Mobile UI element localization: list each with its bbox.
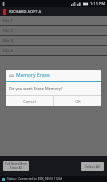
staticText: File 3 bbox=[3, 38, 13, 43]
staticText: OK bbox=[75, 99, 81, 104]
button[interactable]: Cancel bbox=[6, 96, 53, 106]
staticText: 1:11 PM bbox=[90, 1, 106, 6]
staticText: Full Reset Mem bbox=[5, 162, 27, 166]
staticText: Do you want Erase Memory? bbox=[9, 86, 63, 91]
button[interactable]: Select All bbox=[81, 162, 104, 171]
staticText: Cancel bbox=[23, 99, 36, 104]
staticText: File 4 bbox=[3, 48, 13, 53]
button[interactable]: File 3 bbox=[0, 36, 107, 46]
staticText: Memory Erase bbox=[16, 72, 50, 79]
button[interactable]: File 2 bbox=[0, 26, 107, 36]
button[interactable]: RICHARD-SOFT A bbox=[0, 7, 107, 16]
staticText: RICHARD-SOFT A bbox=[9, 9, 42, 14]
button[interactable]: File 4 bbox=[0, 46, 107, 56]
other: Memory bbox=[9, 73, 14, 78]
button[interactable]: File 1 bbox=[0, 16, 107, 26]
staticText: Status : Connected to RDX_DEV.0 11264 bbox=[7, 177, 63, 181]
staticText: Select All bbox=[85, 164, 100, 169]
staticText: File 1 bbox=[3, 18, 13, 23]
staticText: File 2 bbox=[3, 28, 13, 33]
staticText: Erase All bbox=[10, 166, 22, 170]
button[interactable]: Full Reset Mem bbox=[3, 161, 29, 171]
button[interactable]: OK bbox=[54, 96, 101, 106]
